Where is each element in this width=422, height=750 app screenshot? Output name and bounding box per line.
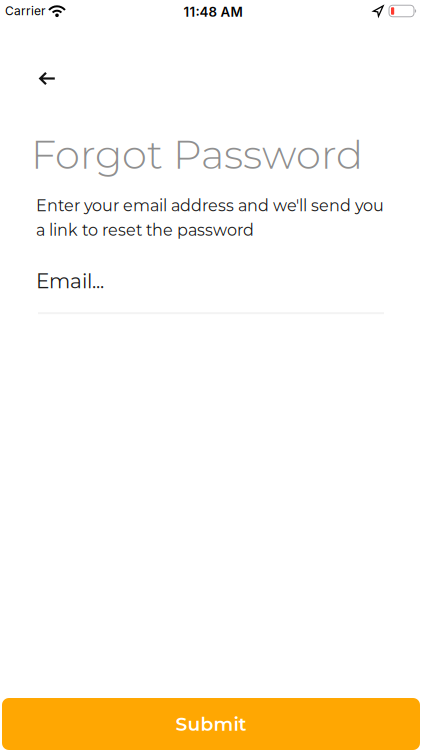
staticText: Forgot Password: [31, 130, 363, 179]
button[interactable]: Email: [0, 240, 384, 314]
button[interactable]: Submit: [2, 698, 420, 750]
staticText: Carrier: [5, 4, 46, 18]
staticText: Enter your email address and we'll send …: [36, 196, 384, 240]
staticText: 11:48 AM: [183, 4, 242, 20]
button[interactable]: Back: [0, 22, 56, 85]
staticText: Submit: [175, 713, 246, 735]
staticText: Email...: [36, 269, 104, 293]
